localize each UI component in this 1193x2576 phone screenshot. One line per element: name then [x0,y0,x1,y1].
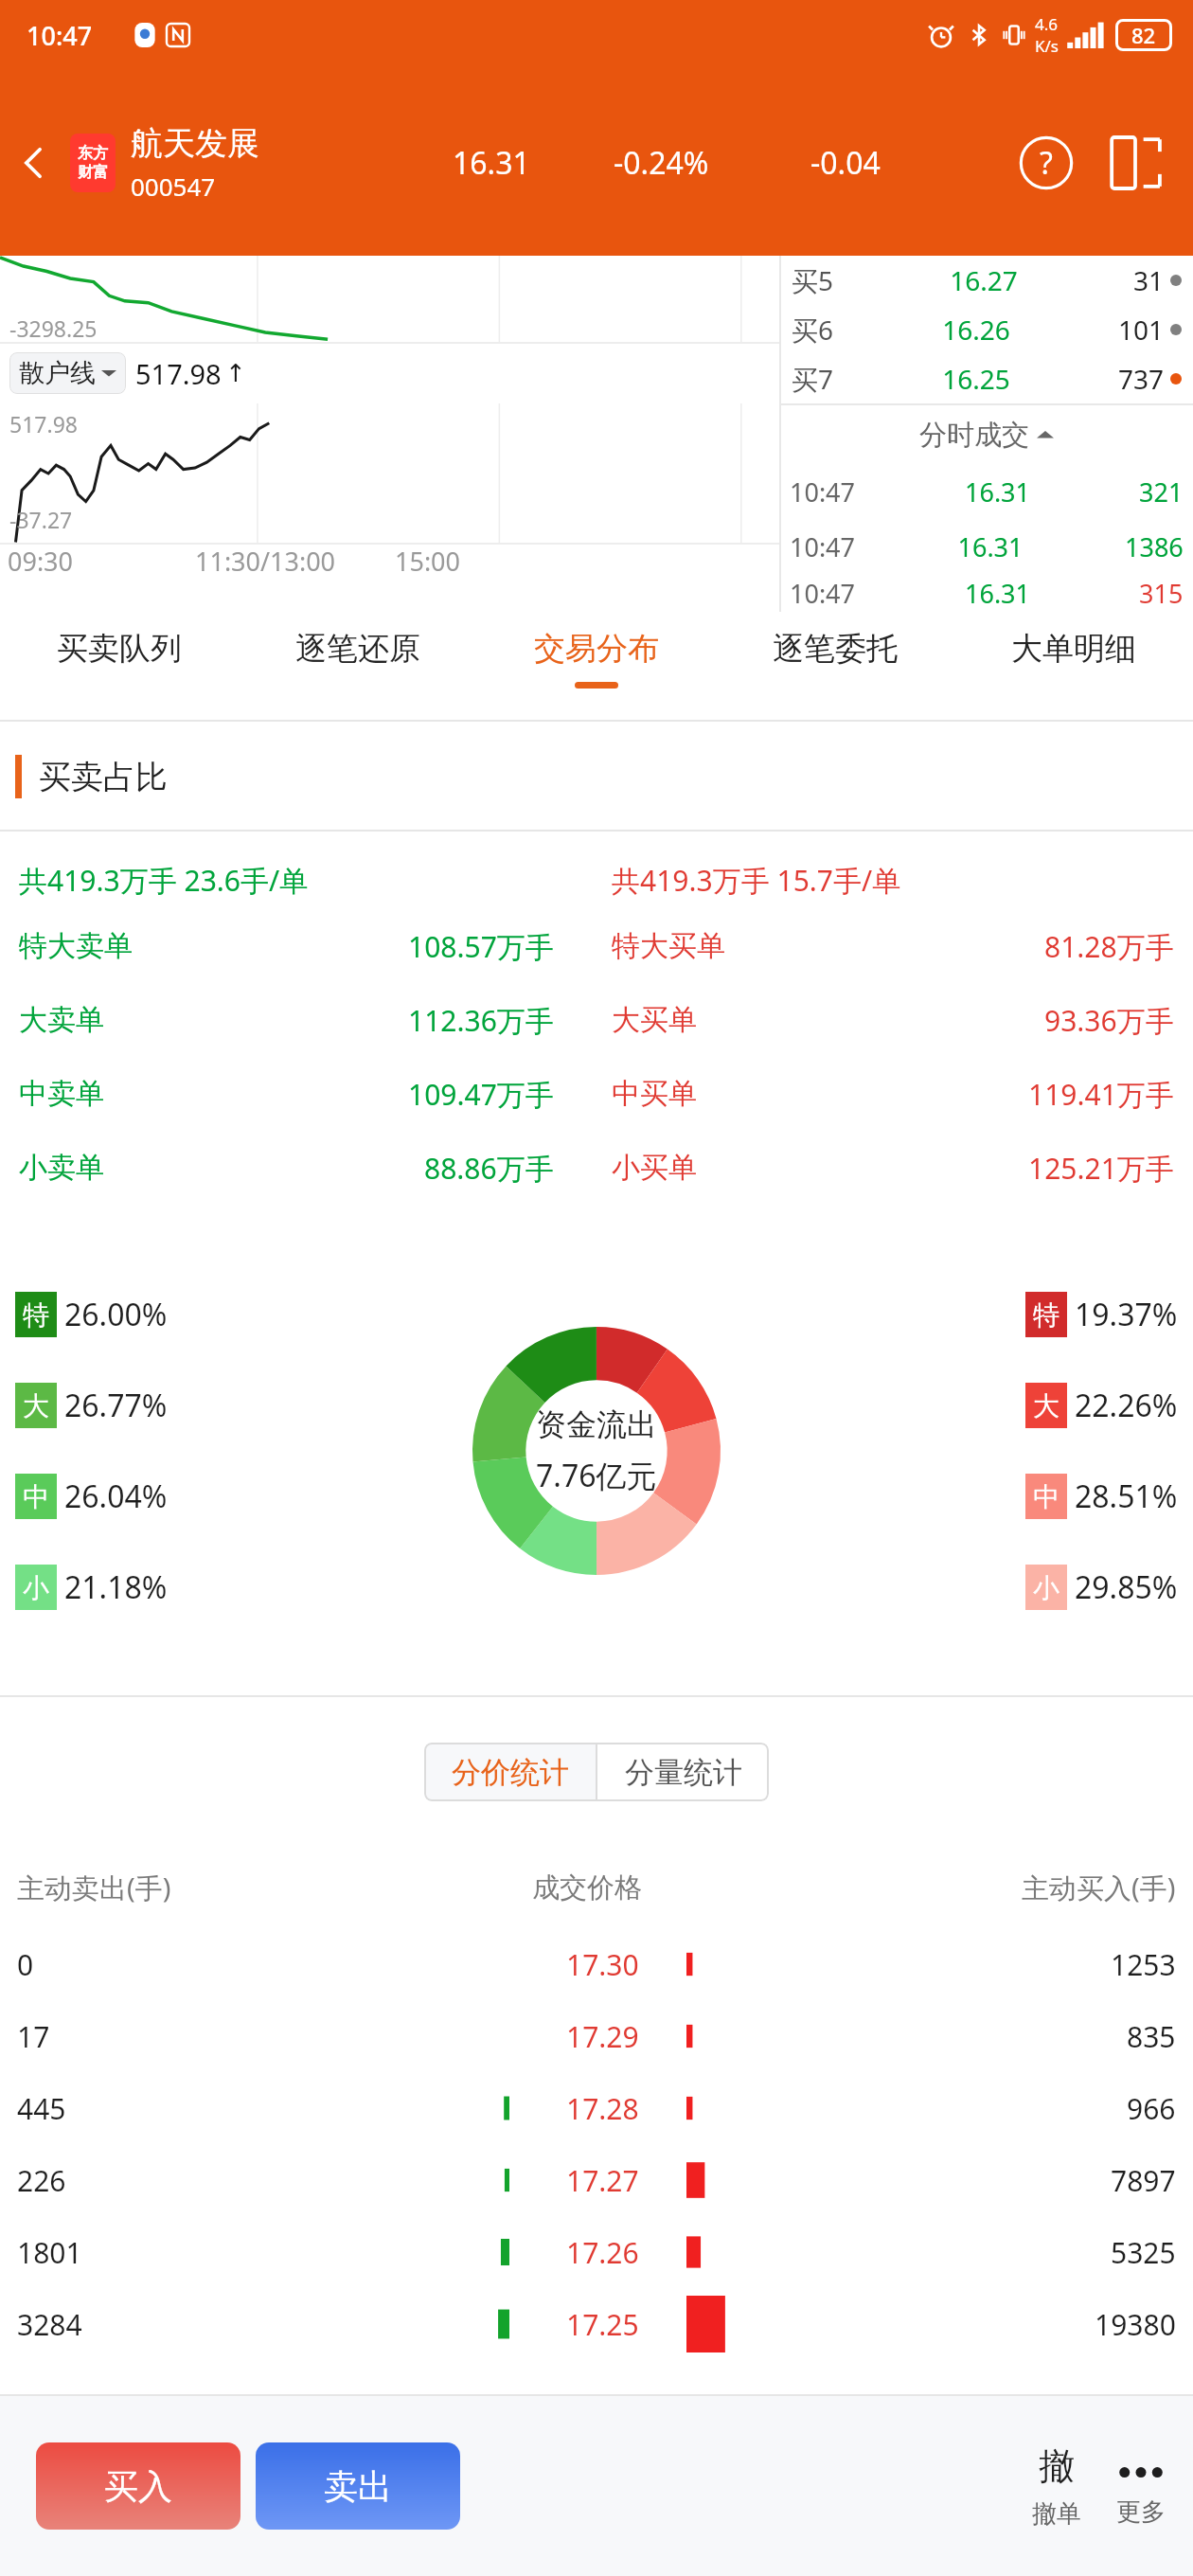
button[interactable]: 卖出 [256,2442,460,2530]
staticText: 买卖占比 [39,757,168,797]
staticText: 特大买单 [612,928,725,964]
staticText: 中 [1033,1480,1059,1513]
staticText: 7897 [1111,2161,1176,2200]
staticText: 资金流出 [536,1405,657,1443]
staticText: 26.77% [64,1385,168,1426]
staticText: 买6 [792,312,834,348]
staticText: -3298.25 [9,313,98,343]
button[interactable]: 买入 [36,2442,240,2530]
staticText: K/s [1035,35,1059,57]
button[interactable]: Scan [1100,128,1170,198]
staticText: 101 [1118,312,1165,348]
staticText: -37.27 [9,505,73,534]
staticText: 21.18% [64,1566,168,1608]
button[interactable]: 买6 [792,305,1182,354]
button[interactable]: 10:47 [790,574,1184,612]
staticText: 3284 [17,2305,82,2344]
staticText: 小 [23,1571,49,1604]
staticText: 16.31 [856,529,1125,564]
staticText: 82 [1131,21,1156,49]
button[interactable]: 3284 [0,2288,1193,2360]
button[interactable]: 更多 [1115,2445,1193,2528]
staticText: 分量统计 [625,1754,742,1791]
staticText: 主动卖出(手) [17,1869,171,1906]
staticText: 108.57万手 [408,927,554,966]
button[interactable]: 撤 [1021,2443,1093,2530]
button[interactable]: 0 [0,1928,1193,2000]
staticText: 航天发展 [131,123,259,164]
staticText: 737 [1118,361,1165,397]
staticText: 1386 [1125,529,1184,564]
staticText: 小买单 [612,1150,697,1186]
staticText: 29.85% [1075,1566,1178,1608]
staticText: 17.30 [566,1945,639,1984]
button[interactable]: 买卖队列 [0,612,239,722]
staticText: 成交价格 [532,1870,642,1905]
staticText: 17.28 [566,2089,639,2128]
button[interactable]: 分时成交 [780,405,1193,464]
staticText: 买入 [104,2465,172,2508]
staticText: 16.27 [834,262,1133,298]
staticText: 逐笔委托 [773,629,898,669]
staticText: 大 [1033,1389,1059,1422]
staticText: 财富 [78,163,108,182]
staticText: 买5 [792,262,834,298]
staticText: 15:00 [395,544,461,579]
staticText: ↑ [225,359,246,387]
staticText: 112.36万手 [408,1001,554,1040]
staticText: 中 [23,1480,49,1513]
button[interactable]: Help [1011,128,1081,198]
staticText: 东方 [78,144,108,163]
staticText: 16.26 [834,312,1118,348]
button[interactable]: 逐笔还原 [239,612,477,722]
staticText: 315 [1139,576,1184,611]
button[interactable]: 交易分布 [477,612,716,722]
staticText: 26.04% [64,1476,168,1517]
button[interactable]: 445 [0,2072,1193,2144]
staticText: 买7 [792,361,834,397]
staticText: 特 [1033,1298,1059,1332]
staticText: 19.37% [1075,1294,1178,1335]
staticText: 共419.3万手 15.7手/单 [612,861,1193,900]
button[interactable]: 买5 [792,256,1182,305]
staticText: 交易分布 [534,629,659,669]
button[interactable]: 逐笔委托 [716,612,954,722]
staticText: 主动买入(手) [1022,1869,1176,1906]
staticText: 31 [1133,262,1165,298]
staticText: 0 [17,1945,34,1984]
staticText: 81.28万手 [1044,927,1174,966]
staticText: 16.31 [856,576,1139,611]
button[interactable]: Back [4,133,64,193]
staticText: 特 [23,1298,49,1332]
staticText: 321 [1139,474,1184,510]
button[interactable]: 分量统计 [597,1743,769,1801]
button[interactable]: 分价统计 [424,1743,596,1801]
staticText: 中买单 [612,1076,697,1112]
staticText: 11:30/13:00 [195,544,336,579]
button[interactable]: 大单明细 [954,612,1193,722]
staticText: 226 [17,2161,66,2200]
staticText: 1801 [17,2233,82,2272]
button[interactable]: 17 [0,2000,1193,2072]
staticText: 09:30 [8,544,74,579]
button[interactable]: 10:47 [790,464,1184,519]
staticText: 125.21万手 [1028,1149,1174,1188]
button[interactable]: 1801 [0,2216,1193,2288]
button[interactable]: 买7 [792,354,1182,403]
staticText: 10:47 [790,576,856,611]
staticText: 517.98 [135,355,222,392]
staticText: 17.26 [566,2233,639,2272]
staticText: 5325 [1111,2233,1176,2272]
staticText: 17.25 [566,2305,639,2344]
staticText: 517.98 [9,409,78,438]
staticText: 1253 [1111,1945,1176,1984]
staticText: ? [1040,142,1053,184]
staticText: 119.41万手 [1028,1075,1174,1114]
staticText: 分时成交 [919,418,1029,453]
staticText: 22.26% [1075,1385,1178,1426]
staticText: 16.31 [856,474,1139,510]
button[interactable]: 散户线 [9,352,126,394]
staticText: 大单明细 [1011,629,1136,669]
button[interactable]: 226 [0,2144,1193,2216]
button[interactable]: 10:47 [790,519,1184,574]
